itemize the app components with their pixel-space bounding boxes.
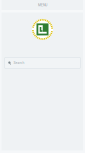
button[interactable]: MENU [0,0,85,10]
staticText: MENU [38,3,47,7]
button[interactable]: Search [4,57,80,68]
staticText: Search [13,61,24,65]
